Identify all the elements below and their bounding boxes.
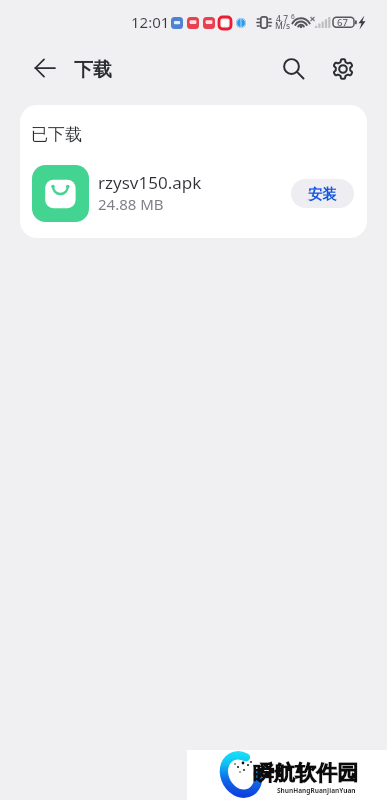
button[interactable]: Search — [274, 50, 310, 86]
staticText: rzysv150.apk — [98, 171, 202, 194]
staticText: ShunHangRuanJianYuan — [277, 786, 356, 795]
staticText: 下载 — [74, 58, 112, 82]
staticText: 12:01 — [131, 12, 170, 32]
button[interactable]: Back — [28, 50, 64, 86]
button[interactable]: Settings — [325, 51, 361, 87]
staticText: 已下载 — [31, 124, 82, 145]
staticText: 瞬航软件园 — [253, 760, 358, 786]
staticText: M/s — [275, 20, 291, 32]
staticText: 24.88 MB — [98, 194, 164, 214]
button[interactable]: 安装 — [291, 179, 354, 208]
staticText: 4.7 — [276, 13, 289, 25]
staticText: 安装 — [308, 185, 337, 203]
staticText: 67 — [337, 16, 348, 29]
button[interactable]: rzysv150.apk — [20, 155, 367, 231]
staticText: 6 — [291, 12, 295, 21]
